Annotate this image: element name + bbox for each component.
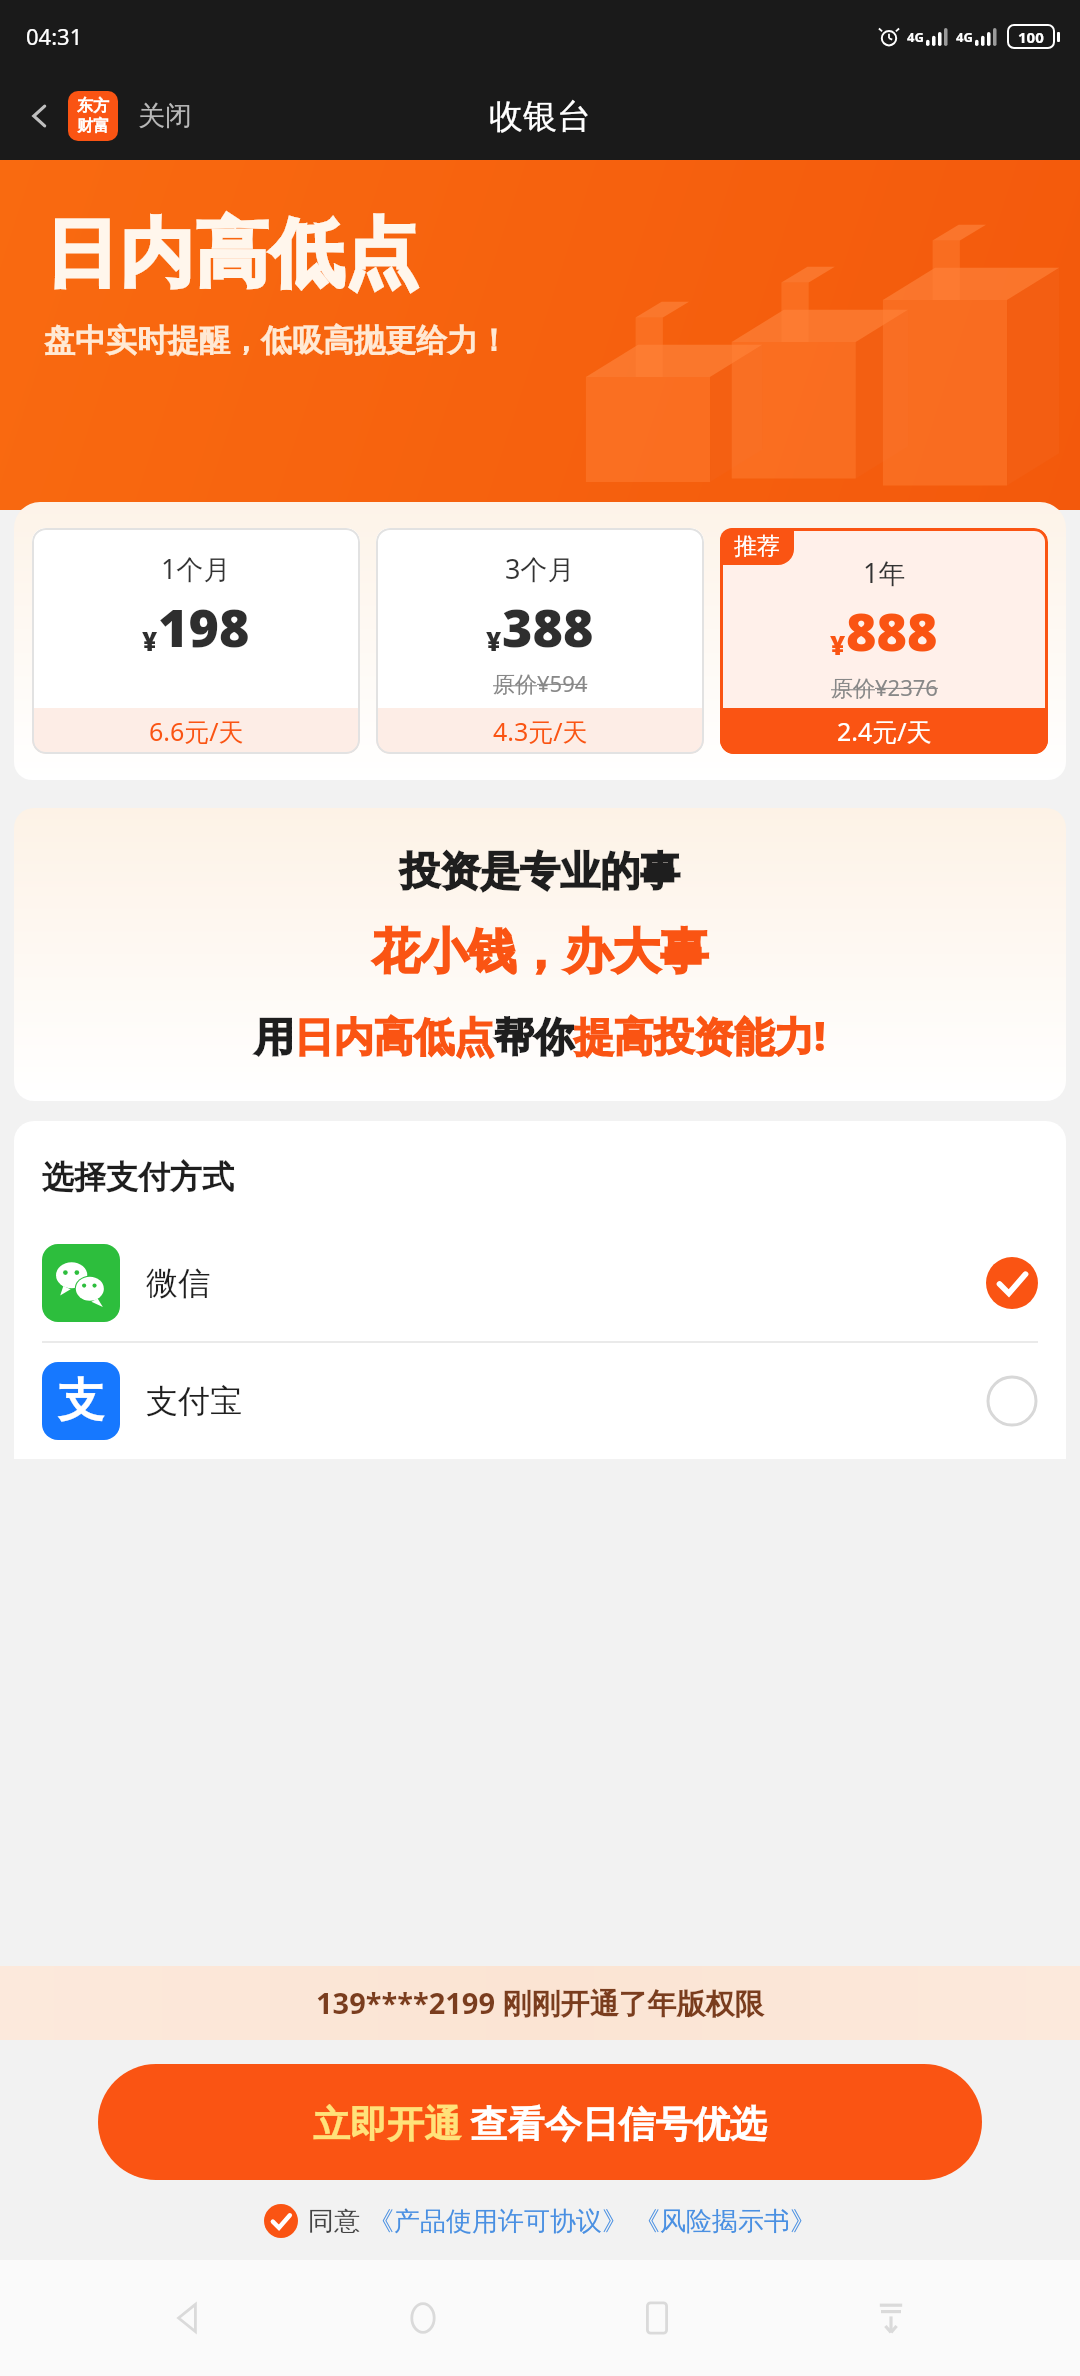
button[interactable]: Recents: [612, 2273, 702, 2363]
button[interactable]: Back: [144, 2273, 234, 2363]
staticText: 388: [502, 591, 594, 662]
button[interactable]: East Money: [68, 91, 118, 141]
staticText: 财富: [77, 116, 109, 136]
staticText: 同意: [308, 2205, 360, 2238]
button[interactable]: 支: [42, 1343, 1038, 1459]
staticText: ¥: [486, 623, 502, 658]
staticText: 4G: [956, 28, 973, 46]
staticText: 4G: [907, 28, 924, 46]
staticText: 日内高低点: [44, 208, 419, 301]
staticText: 东方: [77, 96, 109, 116]
button[interactable]: 3个月: [376, 528, 704, 754]
staticText: 微信: [146, 1263, 210, 1303]
staticText: 1个月: [161, 550, 231, 587]
staticText: 139****2199 刚刚开通了年版权限: [316, 1983, 764, 2023]
staticText: 立即开通 查看今日信号优选: [313, 2097, 767, 2148]
button[interactable]: 1个月: [32, 528, 360, 754]
staticText: 原价¥2376: [831, 672, 938, 702]
staticText: 4.3元/天: [493, 714, 588, 748]
staticText: 888: [846, 595, 938, 666]
staticText: 收银台: [489, 95, 591, 138]
staticText: 花小钱，办大事: [372, 922, 708, 982]
staticText: 《风险揭示书》: [634, 2205, 816, 2238]
staticText: 盘中实时提醒，低吸高抛更给力！: [44, 321, 509, 360]
staticText: 198: [158, 591, 250, 662]
staticText: 投资是专业的事: [400, 846, 680, 896]
button[interactable]: 关闭: [134, 93, 196, 139]
staticText: 支: [58, 1372, 104, 1430]
staticText: 04:31: [26, 21, 83, 51]
button[interactable]: 立即开通 查看今日信号优选: [98, 2064, 982, 2180]
staticText: 选择支付方式: [42, 1157, 234, 1197]
button[interactable]: 1年: [720, 528, 1048, 754]
staticText: 100: [1018, 27, 1044, 47]
staticText: ¥: [830, 627, 846, 662]
staticText: 3个月: [505, 550, 575, 587]
staticText: 用日内高低点帮你提高投资能力!: [254, 1008, 826, 1063]
staticText: 1年: [863, 554, 906, 591]
button[interactable]: Back: [14, 90, 66, 142]
staticText: 2.4元/天: [837, 714, 932, 748]
button[interactable]: 微信: [42, 1225, 1038, 1341]
staticText: 支付宝: [146, 1381, 242, 1421]
button[interactable]: 同意: [264, 2204, 816, 2238]
staticText: 原价¥594: [493, 668, 588, 698]
staticText: 关闭: [138, 99, 192, 133]
button[interactable]: Home: [378, 2273, 468, 2363]
staticText: 6.6元/天: [149, 714, 244, 748]
staticText: 推荐: [734, 532, 780, 561]
button[interactable]: Hide: [846, 2273, 936, 2363]
staticText: ¥: [142, 623, 158, 658]
staticText: 《产品使用许可协议》: [368, 2205, 628, 2238]
